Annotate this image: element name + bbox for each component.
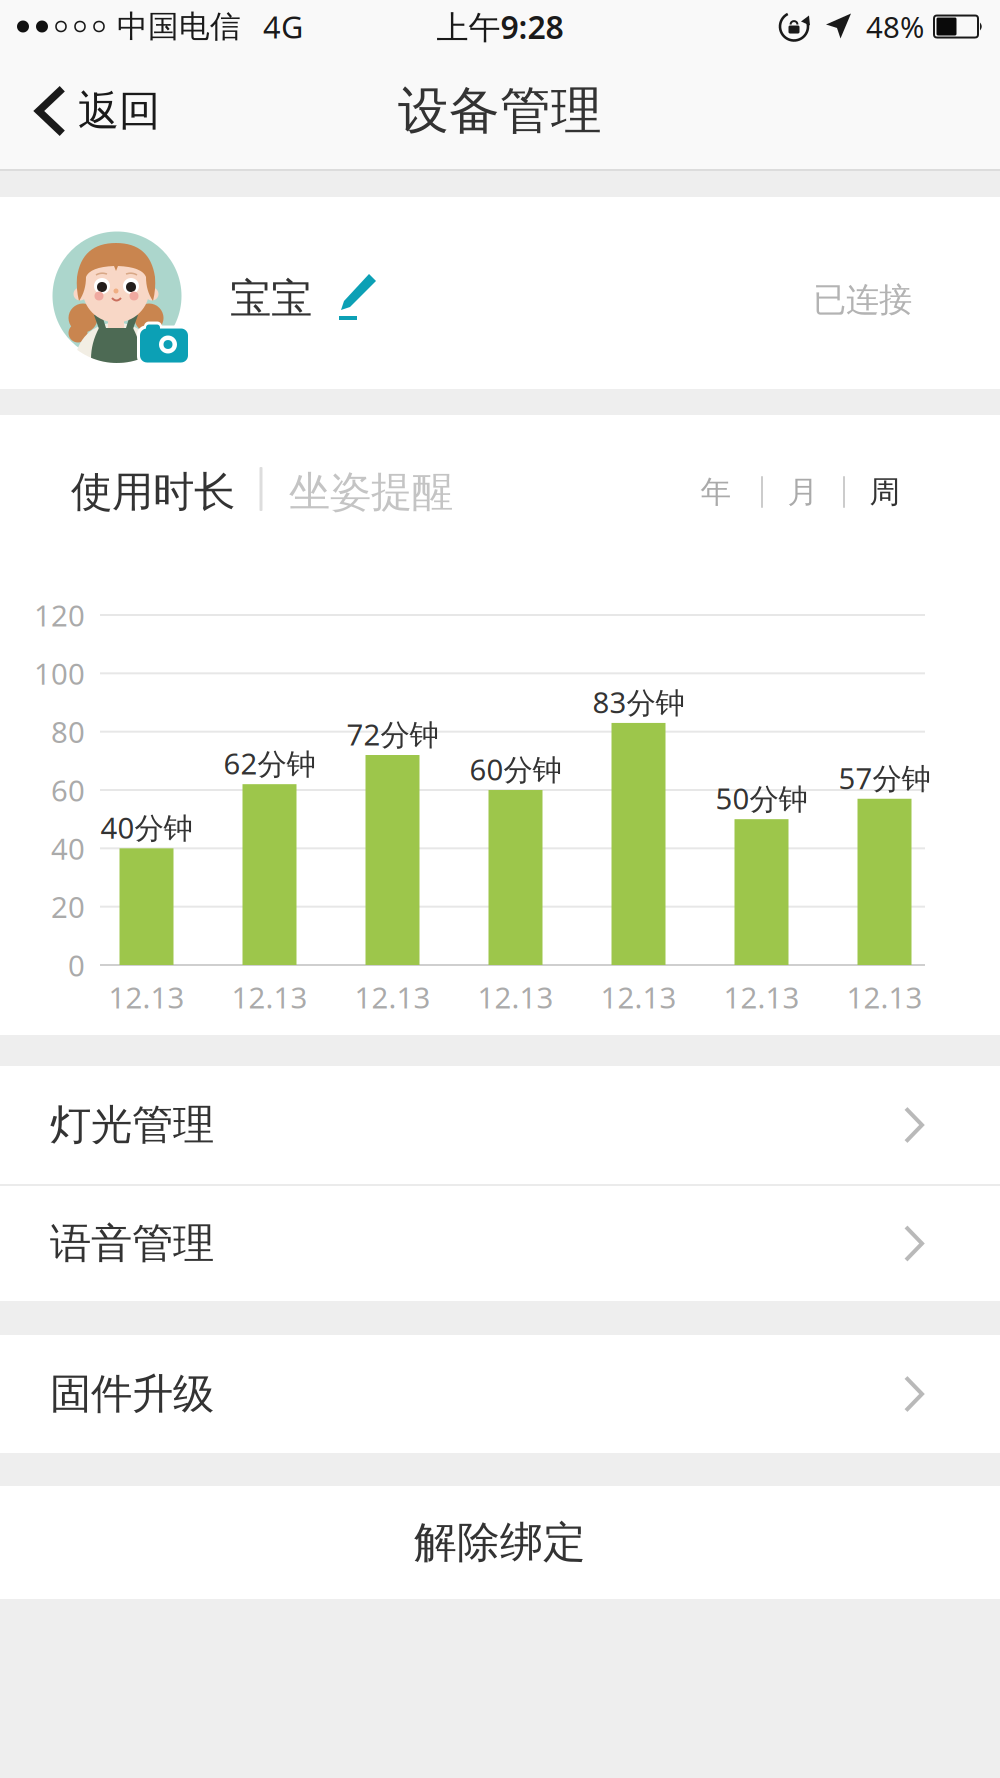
staticText: 月 [787, 473, 818, 511]
staticText: 20 [51, 887, 85, 926]
button[interactable]: 年 [700, 473, 731, 511]
staticText: 50分钟 [715, 779, 807, 818]
staticText: 12.13 [600, 977, 676, 1016]
staticText: 解除绑定 [414, 1516, 586, 1569]
staticText: 使用时长 [71, 467, 235, 517]
staticText: 返回 [78, 86, 160, 136]
staticText: 12.13 [231, 977, 307, 1016]
staticText: 40分钟 [100, 808, 192, 847]
staticText: 已连接 [813, 279, 912, 320]
button[interactable]: 语音管理 [0, 1186, 1000, 1301]
staticText: 72分钟 [346, 714, 438, 753]
button[interactable]: 更换头像 [137, 322, 193, 365]
staticText: 0 [68, 945, 85, 984]
staticText: 83分钟 [592, 682, 684, 721]
staticText: 坐姿提醒 [289, 467, 453, 517]
staticText: 12.13 [477, 977, 553, 1016]
staticText: 宝宝 [230, 274, 312, 324]
staticText: 60分钟 [469, 749, 561, 788]
staticText: 中国电信 [117, 8, 241, 45]
staticText: 12.13 [846, 977, 922, 1016]
staticText: 80 [51, 712, 85, 751]
staticText: 12.13 [723, 977, 799, 1016]
staticText: 120 [34, 595, 85, 634]
button[interactable]: 灯光管理 [0, 1066, 1000, 1184]
staticText: 12.13 [108, 977, 184, 1016]
button[interactable]: 解除绑定 [0, 1486, 1000, 1599]
staticText: 12.13 [354, 977, 430, 1016]
staticText: 固件升级 [50, 1369, 214, 1419]
button[interactable]: 坐姿提醒 [289, 467, 453, 517]
staticText: 40 [51, 829, 85, 868]
staticText: 62分钟 [223, 744, 315, 783]
staticText: 上午9:28 [436, 5, 563, 48]
staticText: 100 [34, 654, 85, 693]
staticText: 年 [700, 473, 731, 511]
button[interactable]: 固件升级 [0, 1335, 1000, 1453]
button[interactable]: 周 [869, 473, 900, 511]
staticText: 设备管理 [398, 80, 602, 142]
button[interactable]: 使用时长 [71, 467, 235, 517]
staticText: 48% [866, 7, 924, 46]
button[interactable]: 返回 [0, 85, 180, 137]
staticText: 4G [263, 6, 303, 47]
staticText: 语音管理 [50, 1218, 214, 1269]
staticText: 60 [51, 770, 85, 809]
button[interactable]: 编辑名称 [312, 264, 388, 322]
staticText: 灯光管理 [50, 1100, 214, 1150]
staticText: 周 [869, 473, 900, 511]
button[interactable]: 月 [787, 473, 818, 511]
staticText: 57分钟 [838, 758, 930, 797]
